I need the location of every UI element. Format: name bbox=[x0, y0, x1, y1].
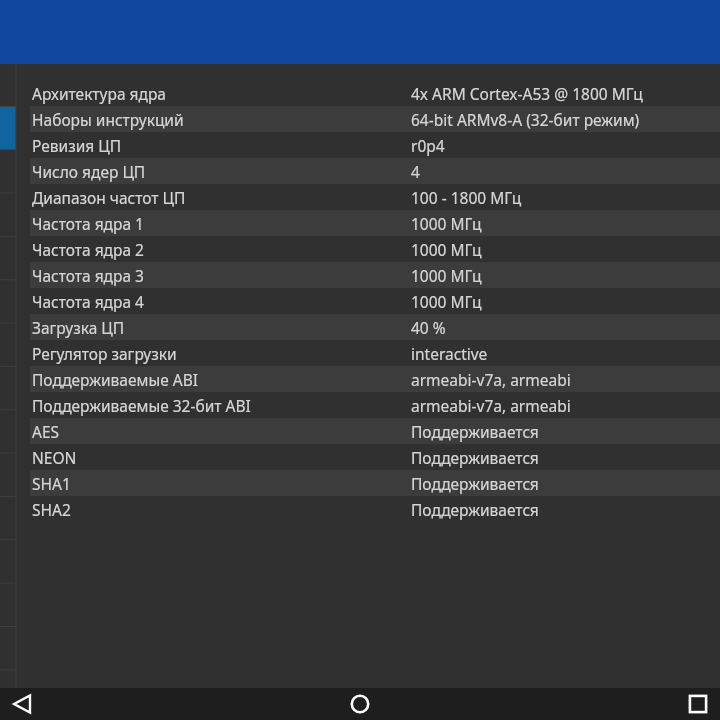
staticText: r0p4 bbox=[411, 135, 445, 156]
staticText: Загрузка ЦП bbox=[32, 317, 125, 338]
button[interactable]: Поддерживаемые ABI bbox=[0, 366, 720, 392]
staticText: Поддерживается bbox=[411, 499, 539, 520]
staticText: Частота ядра 2 bbox=[32, 239, 144, 260]
button[interactable]: Загрузка ЦП bbox=[0, 314, 720, 340]
staticText: 64-bit ARMv8-A (32-бит режим) bbox=[411, 109, 640, 130]
staticText: armeabi-v7a, armeabi bbox=[411, 369, 571, 390]
button[interactable]: Section index bbox=[0, 64, 16, 688]
button[interactable]: SHA1 bbox=[0, 470, 720, 496]
staticText: 1000 МГц bbox=[411, 265, 482, 286]
staticText: Частота ядра 4 bbox=[32, 291, 144, 312]
button[interactable]: Back bbox=[0, 688, 44, 720]
staticText: Регулятор загрузки bbox=[32, 343, 177, 364]
staticText: Поддерживается bbox=[411, 473, 539, 494]
staticText: Поддерживаемые 32-бит ABI bbox=[32, 395, 251, 416]
button[interactable]: Ревизия ЦП bbox=[0, 132, 720, 158]
button[interactable]: Архитектура ядра bbox=[0, 80, 720, 106]
button[interactable]: Частота ядра 4 bbox=[0, 288, 720, 314]
staticText: SHA2 bbox=[32, 499, 71, 520]
button[interactable]: Диапазон частот ЦП bbox=[0, 184, 720, 210]
button[interactable]: Частота ядра 2 bbox=[0, 236, 720, 262]
staticText: 1000 МГц bbox=[411, 239, 482, 260]
staticText: 100 - 1800 МГц bbox=[411, 187, 522, 208]
staticText: Частота ядра 3 bbox=[32, 265, 144, 286]
button[interactable]: Наборы инструкций bbox=[0, 106, 720, 132]
button[interactable]: Recent apps bbox=[676, 688, 720, 720]
staticText: Диапазон частот ЦП bbox=[32, 187, 186, 208]
staticText: 1000 МГц bbox=[411, 213, 482, 234]
button[interactable]: Частота ядра 1 bbox=[0, 210, 720, 236]
staticText: Поддерживается bbox=[411, 447, 539, 468]
staticText: Архитектура ядра bbox=[32, 83, 166, 104]
button[interactable]: AES bbox=[0, 418, 720, 444]
staticText: Поддерживаемые ABI bbox=[32, 369, 198, 390]
button[interactable]: Поддерживаемые 32-бит ABI bbox=[0, 392, 720, 418]
staticText: interactive bbox=[411, 343, 488, 364]
staticText: Ревизия ЦП bbox=[32, 135, 122, 156]
staticText: 4x ARM Cortex-A53 @ 1800 МГц bbox=[411, 83, 643, 104]
button[interactable]: Число ядер ЦП bbox=[0, 158, 720, 184]
staticText: armeabi-v7a, armeabi bbox=[411, 395, 571, 416]
button[interactable]: Home bbox=[338, 688, 382, 720]
button[interactable]: Регулятор загрузки bbox=[0, 340, 720, 366]
staticText: SHA1 bbox=[32, 473, 71, 494]
button[interactable]: SHA2 bbox=[0, 496, 720, 522]
staticText: NEON bbox=[32, 447, 77, 468]
button[interactable]: NEON bbox=[0, 444, 720, 470]
staticText: 40 % bbox=[411, 317, 446, 338]
staticText: 4 bbox=[411, 161, 420, 182]
staticText: 1000 МГц bbox=[411, 291, 482, 312]
button[interactable]: Частота ядра 3 bbox=[0, 262, 720, 288]
staticText: AES bbox=[32, 421, 60, 442]
staticText: Число ядер ЦП bbox=[32, 161, 146, 182]
staticText: Частота ядра 1 bbox=[32, 213, 144, 234]
staticText: Наборы инструкций bbox=[32, 109, 184, 130]
staticText: Поддерживается bbox=[411, 421, 539, 442]
